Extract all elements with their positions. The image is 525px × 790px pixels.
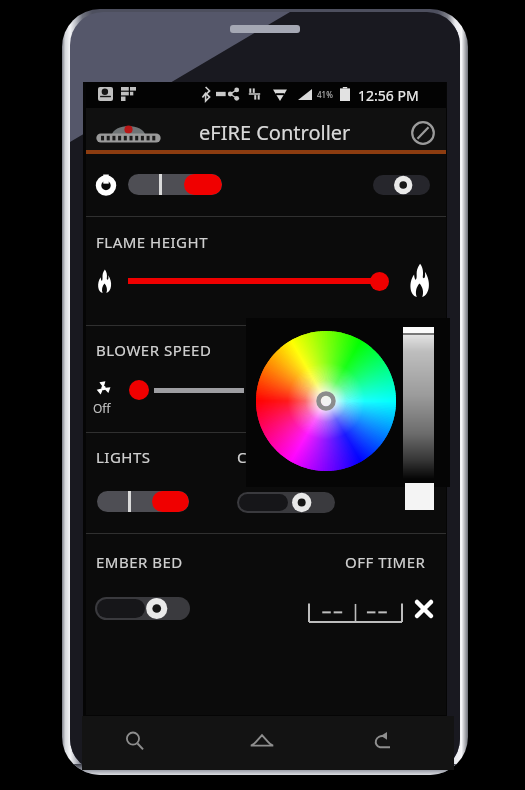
button[interactable]: Back (353, 713, 413, 767)
staticText: OFF TIMER (345, 552, 426, 572)
button[interactable]: Home (232, 713, 292, 767)
staticText: 12:56 PM (358, 86, 419, 105)
button[interactable]: Colour wheel (256, 330, 396, 472)
button[interactable]: Blower speed (129, 380, 149, 400)
button[interactable]: Toggle off (373, 175, 430, 195)
button[interactable]: Toggle off (95, 597, 190, 620)
button[interactable]: Power (95, 174, 117, 197)
staticText: LIGHTS (96, 447, 151, 467)
button[interactable]: eFIRE logo (95, 120, 162, 144)
button[interactable]: Toggle on (97, 491, 189, 512)
button[interactable]: Brightness (403, 327, 434, 479)
staticText: eFIRE Controller (199, 119, 351, 146)
staticText: FLAME HEIGHT (96, 232, 208, 252)
button[interactable]: Clear timer (414, 599, 434, 619)
button[interactable]: Search (104, 713, 164, 767)
button[interactable]: Flame height (370, 272, 389, 291)
staticText: EMBER BED (96, 552, 183, 572)
staticText: 41% (317, 89, 333, 100)
button[interactable]: Timer value (308, 595, 403, 623)
staticText: COLOR (237, 447, 290, 467)
button[interactable]: Info (410, 120, 436, 146)
button[interactable]: Toggle on (128, 174, 222, 195)
button[interactable]: Toggle off (237, 492, 335, 513)
staticText: BLOWER SPEED (96, 340, 212, 360)
staticText: Off (93, 400, 111, 416)
